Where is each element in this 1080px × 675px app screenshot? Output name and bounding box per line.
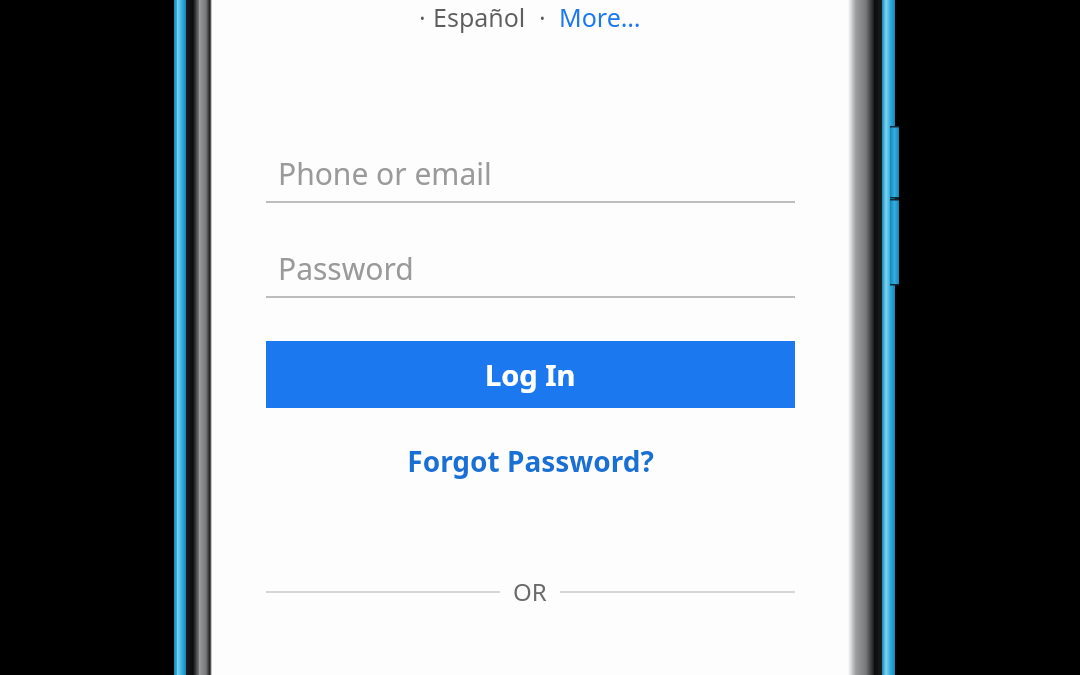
button[interactable]: Password bbox=[266, 240, 795, 298]
button[interactable]: Español bbox=[433, 0, 526, 34]
staticText: Password bbox=[278, 248, 414, 289]
staticText: Phone or email bbox=[278, 153, 492, 194]
staticText: OR bbox=[513, 575, 547, 608]
button[interactable]: Phone or email bbox=[266, 145, 795, 203]
staticText: · bbox=[526, 0, 559, 34]
staticText: More… bbox=[559, 0, 641, 34]
staticText: · bbox=[419, 0, 433, 34]
button[interactable]: More… bbox=[559, 0, 641, 34]
button[interactable]: Log In bbox=[266, 341, 795, 408]
staticText: Forgot Password? bbox=[407, 442, 654, 480]
staticText: Español bbox=[433, 0, 526, 34]
staticText: Log In bbox=[485, 355, 576, 394]
button[interactable]: Forgot Password? bbox=[266, 436, 795, 486]
